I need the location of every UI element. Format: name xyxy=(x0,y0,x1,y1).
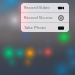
button[interactable]: Record Video xyxy=(21,3,69,12)
button[interactable]: Record Slo-mo xyxy=(21,13,69,22)
button[interactable]: Take Photo xyxy=(21,23,69,32)
staticText: Record Slo-mo xyxy=(24,15,58,21)
staticText: Take Photo xyxy=(24,25,58,31)
staticText: Record Video xyxy=(24,5,58,11)
